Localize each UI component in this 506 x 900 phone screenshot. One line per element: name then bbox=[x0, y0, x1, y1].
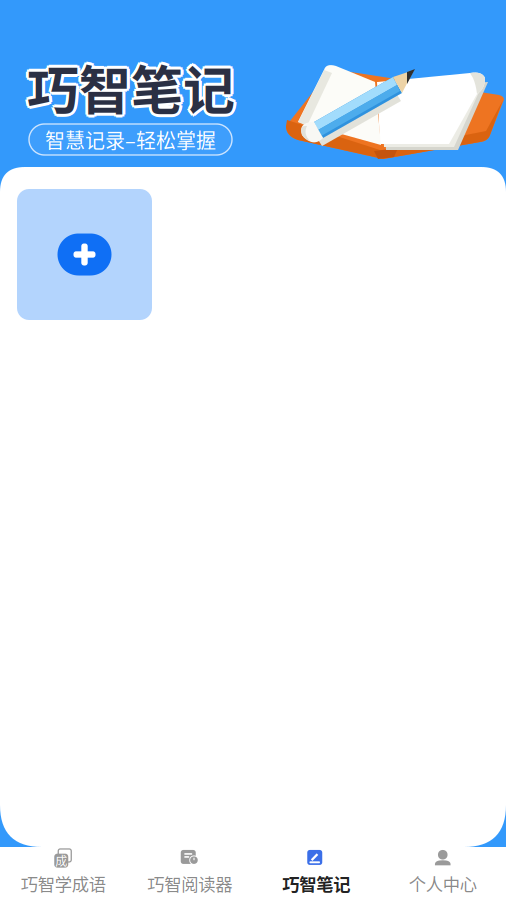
staticText: 巧智笔记 bbox=[27, 49, 235, 125]
button[interactable]: 巧智阅读器 bbox=[126, 841, 253, 900]
button[interactable]: 新建笔记 bbox=[17, 189, 152, 320]
staticText: 巧智笔记 bbox=[29, 47, 237, 122]
button[interactable]: 个人中心 bbox=[379, 841, 506, 900]
button[interactable]: 巧智笔记 bbox=[253, 841, 379, 900]
staticText: 个人中心 bbox=[409, 871, 477, 896]
staticText: 巧智笔记 bbox=[282, 871, 350, 896]
staticText: 巧智笔记 bbox=[24, 49, 232, 125]
button[interactable]: 智慧记录–轻松掌握 bbox=[29, 124, 232, 155]
staticText: 智慧记录–轻松掌握 bbox=[45, 125, 216, 154]
staticText: 巧智笔记 bbox=[30, 49, 238, 125]
staticText: 巧智笔记 bbox=[25, 51, 233, 127]
staticText: 巧智笔记 bbox=[27, 46, 235, 122]
staticText: 巧智笔记 bbox=[29, 51, 237, 127]
staticText: 巧智笔记 bbox=[25, 47, 233, 122]
staticText: 巧智笔记 bbox=[27, 52, 235, 128]
staticText: 巧智阅读器 bbox=[147, 871, 232, 896]
staticText: 巧智学成语 bbox=[21, 871, 106, 896]
staticText: 成 bbox=[55, 852, 67, 869]
button[interactable]: 成 bbox=[0, 841, 126, 900]
